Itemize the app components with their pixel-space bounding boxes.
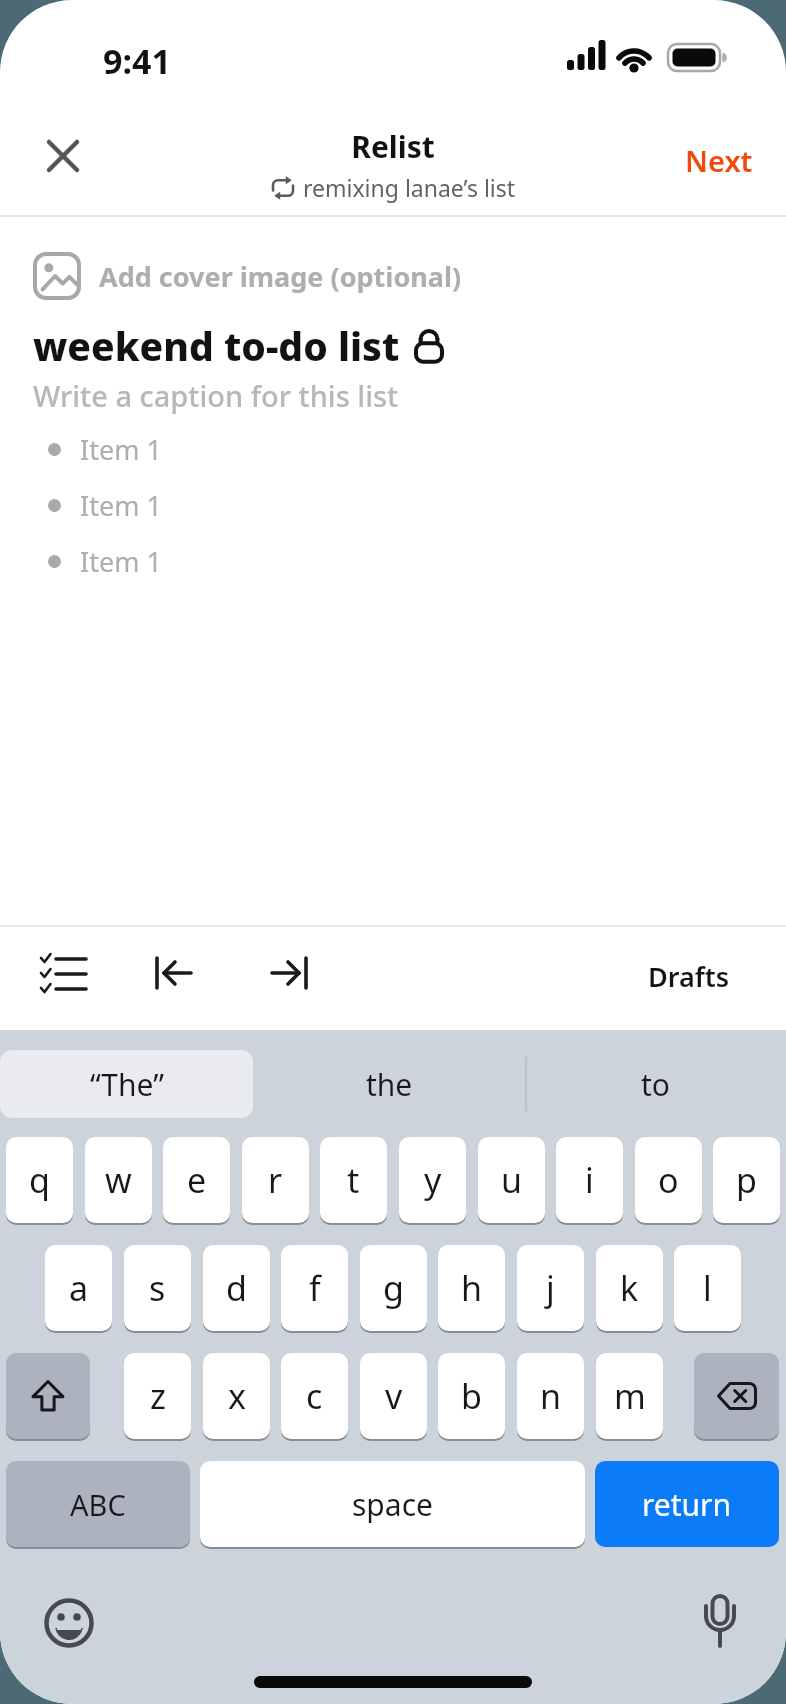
button[interactable]: p	[713, 1137, 780, 1223]
button[interactable]	[698, 1594, 742, 1652]
staticText: f	[309, 1265, 321, 1311]
button[interactable]	[6, 1353, 90, 1439]
staticText: return	[642, 1484, 732, 1525]
staticText: n	[540, 1373, 562, 1419]
button[interactable]: m	[596, 1353, 663, 1439]
button[interactable]	[270, 956, 308, 990]
staticText: m	[614, 1373, 646, 1419]
staticText: Relist	[0, 126, 786, 167]
staticText: i	[585, 1157, 594, 1203]
staticText: q	[29, 1157, 50, 1203]
staticText: space	[352, 1484, 433, 1525]
button[interactable]: q	[6, 1137, 73, 1223]
button[interactable]: j	[517, 1245, 584, 1331]
button[interactable]: Add cover image (optional)	[33, 252, 462, 300]
staticText: z	[150, 1373, 166, 1419]
staticText: x	[228, 1373, 246, 1419]
button[interactable]: e	[163, 1137, 230, 1223]
button[interactable]: n	[517, 1353, 584, 1439]
button[interactable]	[40, 955, 88, 995]
button[interactable]: b	[438, 1353, 505, 1439]
staticText: a	[69, 1265, 89, 1311]
button[interactable]: o	[635, 1137, 702, 1223]
staticText: k	[620, 1265, 639, 1311]
staticText: Item 1	[80, 487, 162, 524]
button[interactable]: i	[556, 1137, 623, 1223]
staticText: d	[226, 1265, 247, 1311]
staticText: p	[736, 1157, 757, 1203]
staticText: b	[461, 1373, 482, 1419]
staticText: Item 1	[80, 543, 162, 580]
staticText: c	[306, 1373, 323, 1419]
button[interactable]: t	[320, 1137, 387, 1223]
button[interactable]: “The”	[0, 1050, 253, 1118]
staticText: Item 1	[80, 431, 162, 468]
button[interactable]: f	[281, 1245, 348, 1331]
button[interactable]: d	[203, 1245, 270, 1331]
button[interactable]: s	[124, 1245, 191, 1331]
button[interactable]: to	[525, 1050, 786, 1118]
button[interactable]	[155, 956, 193, 990]
staticText: the	[366, 1064, 413, 1105]
button[interactable]: x	[203, 1353, 270, 1439]
button[interactable]: z	[124, 1353, 191, 1439]
staticText: h	[461, 1265, 483, 1311]
button[interactable]: ABC	[6, 1461, 190, 1547]
button[interactable]: y	[399, 1137, 466, 1223]
staticText: Next	[685, 141, 753, 180]
staticText: to	[641, 1064, 670, 1105]
staticText: g	[383, 1265, 404, 1311]
staticText: 9:41	[103, 38, 171, 84]
button[interactable]: Next	[643, 135, 753, 185]
button[interactable]: h	[438, 1245, 505, 1331]
staticText: u	[501, 1157, 523, 1203]
button[interactable]	[47, 140, 79, 172]
staticText: l	[703, 1265, 712, 1311]
staticText: Add cover image (optional)	[99, 258, 462, 295]
staticText: ABC	[70, 1485, 126, 1524]
button[interactable]: a	[45, 1245, 112, 1331]
button[interactable]: l	[674, 1245, 741, 1331]
staticText: v	[385, 1373, 403, 1419]
staticText: r	[268, 1157, 283, 1203]
staticText: Drafts	[648, 958, 730, 995]
button[interactable]: w	[85, 1137, 152, 1223]
button[interactable]: r	[242, 1137, 309, 1223]
button[interactable]: v	[360, 1353, 427, 1439]
staticText: e	[187, 1157, 207, 1203]
button[interactable]: k	[596, 1245, 663, 1331]
button[interactable]	[44, 1598, 94, 1648]
button[interactable]: return	[595, 1461, 779, 1547]
staticText: “The”	[90, 1064, 164, 1105]
button[interactable]: space	[200, 1461, 585, 1547]
button[interactable]	[694, 1353, 779, 1439]
staticText: y	[424, 1157, 442, 1203]
button[interactable]: Drafts	[610, 950, 730, 1002]
staticText: Write a caption for this list	[33, 376, 399, 415]
button[interactable]: c	[281, 1353, 348, 1439]
staticText: remixing lanae’s list	[303, 172, 516, 203]
staticText: j	[546, 1265, 555, 1311]
button[interactable]: u	[478, 1137, 545, 1223]
staticText: s	[149, 1265, 166, 1311]
staticText: weekend to-do list	[33, 319, 400, 372]
staticText: t	[347, 1157, 360, 1203]
staticText: w	[105, 1157, 132, 1203]
staticText: o	[658, 1157, 679, 1203]
button[interactable]: the	[253, 1050, 525, 1118]
button[interactable]: g	[360, 1245, 427, 1331]
